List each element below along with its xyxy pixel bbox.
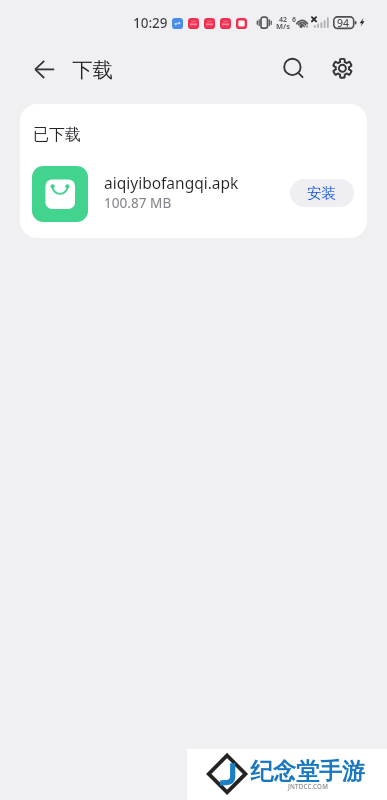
- staticText: aiqiyibofangqi.apk: [104, 172, 239, 193]
- staticText: 42: [279, 15, 288, 25]
- button[interactable]: Back: [22, 46, 66, 90]
- staticText: 6: [292, 15, 297, 25]
- staticText: 10:29: [133, 14, 168, 32]
- staticText: 纪念堂手游: [250, 757, 365, 786]
- button[interactable]: Settings: [320, 46, 364, 90]
- button[interactable]: 安装: [290, 179, 354, 207]
- staticText: JNTDCC.COM: [288, 782, 329, 790]
- button[interactable]: aiqiyibofangqi.apk: [20, 104, 367, 238]
- staticText: 已下载: [33, 125, 81, 145]
- staticText: 100.87 MB: [104, 193, 172, 212]
- staticText: 下载: [72, 57, 113, 83]
- staticText: M/s: [276, 21, 290, 31]
- button[interactable]: Search: [270, 45, 314, 89]
- staticText: 94: [337, 16, 350, 30]
- staticText: 安装: [307, 184, 337, 202]
